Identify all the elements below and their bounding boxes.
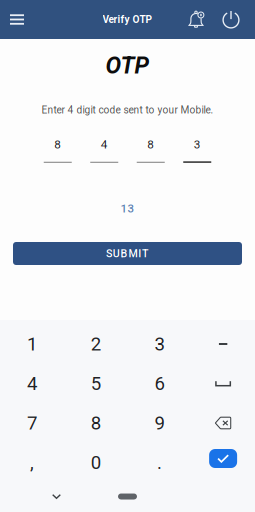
button[interactable]: 8 bbox=[137, 139, 165, 163]
button[interactable]: Notifications bbox=[179, 0, 213, 39]
button[interactable]: 4 bbox=[90, 139, 118, 163]
staticText: 3 bbox=[154, 333, 164, 355]
button[interactable]: Log out bbox=[213, 0, 249, 39]
button[interactable]: . bbox=[127, 443, 191, 482]
staticText: 1 bbox=[27, 333, 37, 355]
staticText: 8 bbox=[91, 412, 101, 434]
staticText: 8 bbox=[147, 138, 154, 151]
button[interactable]: , bbox=[0, 443, 64, 482]
button[interactable]: 9 bbox=[127, 403, 191, 443]
button[interactable]: Hide keyboard bbox=[40, 481, 73, 512]
button[interactable]: 6 bbox=[127, 364, 191, 403]
button[interactable]: SUBMIT bbox=[13, 242, 242, 265]
button[interactable]: 5 bbox=[64, 364, 128, 403]
button[interactable]: Dash bbox=[191, 324, 255, 363]
staticText: SUBMIT bbox=[106, 247, 149, 260]
button[interactable]: 0 bbox=[64, 443, 128, 482]
button[interactable]: Delete bbox=[191, 403, 255, 442]
button[interactable]: 1 bbox=[0, 324, 64, 364]
staticText: 0 bbox=[91, 452, 101, 473]
button[interactable]: 7 bbox=[0, 403, 64, 443]
staticText: OTP bbox=[105, 52, 149, 79]
staticText: Enter 4 digit code sent to your Mobile. bbox=[41, 104, 213, 116]
staticText: 3 bbox=[194, 138, 201, 151]
staticText: 6 bbox=[154, 373, 164, 394]
staticText: 9 bbox=[154, 412, 164, 434]
button[interactable]: Space bbox=[191, 364, 255, 403]
staticText: 13 bbox=[120, 202, 134, 215]
staticText: 4 bbox=[101, 138, 108, 151]
button[interactable]: Done bbox=[191, 443, 255, 482]
staticText: 2 bbox=[91, 333, 101, 355]
button[interactable]: 3 bbox=[127, 324, 191, 364]
staticText: 4 bbox=[27, 373, 37, 394]
staticText: 8 bbox=[54, 138, 61, 151]
button[interactable]: 8 bbox=[44, 139, 72, 163]
button[interactable]: 8 bbox=[64, 403, 128, 443]
staticText: . bbox=[157, 452, 162, 473]
button[interactable]: 2 bbox=[64, 324, 128, 364]
button[interactable]: 3 bbox=[183, 139, 211, 163]
staticText: 5 bbox=[91, 373, 101, 394]
staticText: , bbox=[30, 452, 34, 473]
button[interactable]: 4 bbox=[0, 364, 64, 403]
staticText: 7 bbox=[27, 412, 37, 434]
button[interactable]: Menu bbox=[0, 0, 34, 39]
staticText: Verify OTP bbox=[102, 14, 152, 25]
